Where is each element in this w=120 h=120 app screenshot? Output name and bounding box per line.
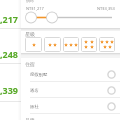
staticText: 價格 (26, 0, 34, 3)
button[interactable]: 3 star rating (63, 37, 79, 52)
button[interactable]: 4 star rating (81, 37, 97, 52)
button[interactable]: 酒店 (21, 82, 120, 98)
staticText: 星級 (25, 31, 35, 37)
staticText: ,248 (0, 48, 19, 60)
button[interactable]: 價格 (21, 0, 120, 28)
button[interactable]: 2 star rating (44, 37, 61, 52)
staticText: ,217 (0, 13, 19, 25)
staticText: 品牌 (25, 117, 35, 120)
staticText: ,339 (0, 84, 19, 96)
staticText: 旅社 (30, 104, 39, 109)
button[interactable]: 旅社 (21, 98, 120, 114)
staticText: NT$1,217 (26, 6, 44, 11)
staticText: 度假別墅 (30, 72, 48, 77)
staticText: NT$3,353 (97, 6, 115, 11)
button[interactable]: 5 star rating (99, 37, 115, 52)
staticText: 住宿 (25, 61, 35, 67)
button[interactable]: 度假別墅 (21, 66, 120, 82)
button[interactable]: 1 star rating (25, 37, 42, 52)
staticText: 酒店 (30, 88, 39, 93)
